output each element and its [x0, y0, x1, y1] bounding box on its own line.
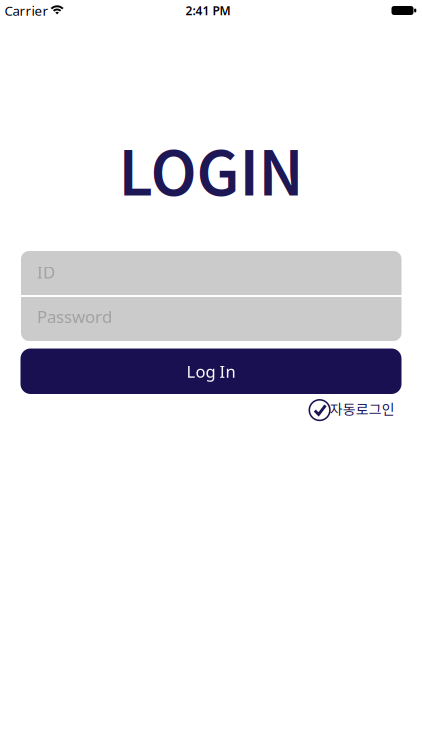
staticText: 자동로그인	[330, 399, 395, 419]
staticText: ID	[37, 261, 55, 283]
staticText: Password	[37, 305, 112, 328]
staticText: LOGIN	[118, 125, 303, 213]
button[interactable]: 자동로그인	[308, 399, 396, 422]
staticText: Carrier	[4, 1, 48, 20]
staticText: Log In	[186, 360, 235, 382]
button[interactable]: Password	[21, 297, 401, 341]
button[interactable]: ID	[21, 251, 401, 295]
button[interactable]: Log In	[20, 348, 401, 394]
staticText: 2:41 PM	[185, 2, 230, 19]
